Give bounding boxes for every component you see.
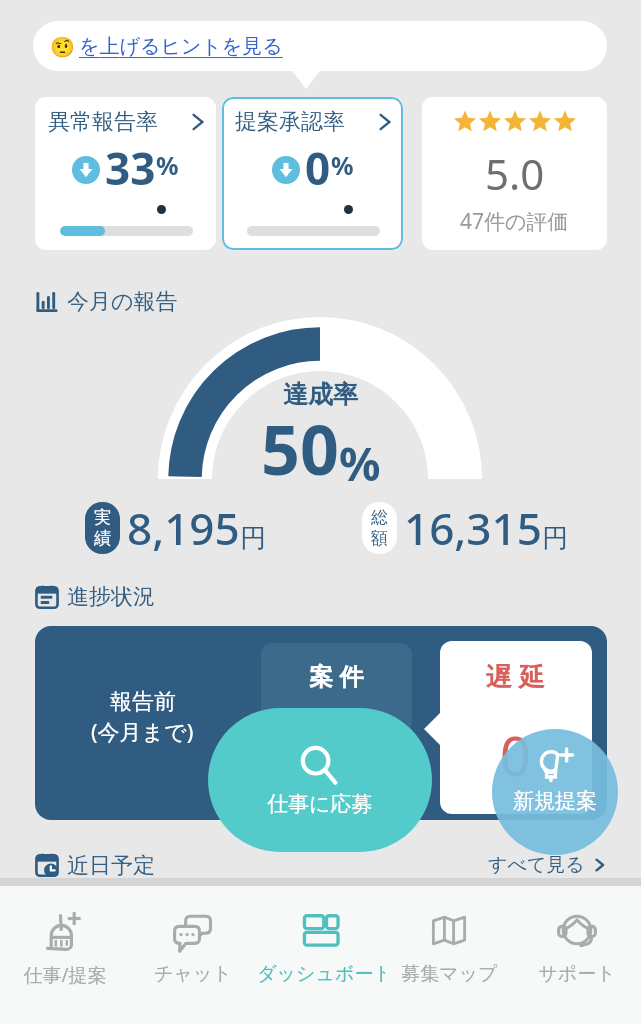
staticText: % — [156, 148, 179, 182]
staticText: 遅 延 — [486, 658, 545, 694]
staticText: 総 — [371, 507, 388, 528]
staticText: 報告前 — [110, 688, 176, 716]
staticText: 績 — [94, 528, 111, 549]
staticText: ダッシュボード — [257, 962, 385, 986]
staticText: 33 — [105, 138, 156, 186]
staticText: 進捗状況 — [67, 583, 155, 611]
staticText: 16,315 — [404, 498, 542, 558]
staticText: % — [331, 148, 354, 182]
staticText: 異常報告率 — [48, 108, 158, 136]
staticText: 募集マップ — [401, 962, 498, 986]
staticText: 実 — [94, 507, 111, 528]
button[interactable]: 仕事/提案 — [0, 886, 129, 1024]
staticText: 新規提案 — [513, 788, 597, 814]
button[interactable]: 新規提案 — [492, 729, 618, 855]
staticText: 50 — [261, 402, 339, 495]
button[interactable]: 提案承認率 — [222, 97, 403, 250]
button[interactable]: 🤨 — [33, 21, 607, 71]
staticText: チャット — [154, 962, 232, 986]
staticText: 🤨 — [50, 35, 75, 58]
staticText: 達成率 — [283, 379, 358, 410]
button[interactable]: 異常報告率 — [35, 97, 216, 250]
staticText: 0 — [305, 138, 331, 186]
staticText: 0 — [500, 718, 531, 792]
staticText: % — [339, 432, 381, 495]
button[interactable]: サポート — [513, 886, 641, 1024]
staticText: を上げるヒントを見る — [79, 34, 283, 59]
button[interactable]: 5.0 — [422, 97, 607, 250]
staticText: 近日予定 — [67, 852, 155, 878]
staticText: 円 — [542, 522, 568, 555]
staticText: (今月まで) — [91, 716, 194, 746]
button[interactable]: ダッシュボード — [257, 886, 385, 1024]
staticText: 提案承認率 — [235, 108, 345, 136]
button[interactable]: 仕事に応募 — [208, 708, 432, 852]
staticText: 額 — [371, 528, 388, 549]
staticText: 仕事/提案 — [23, 962, 107, 988]
other: 新規提案 — [535, 747, 575, 787]
staticText: 案 件 — [309, 659, 364, 692]
staticText: 仕事に応募 — [267, 791, 373, 817]
staticText: すべて見る — [488, 853, 585, 877]
button[interactable]: チャット — [129, 886, 257, 1024]
staticText: 47件の評価 — [460, 207, 569, 236]
button[interactable]: すべて見る — [488, 853, 607, 877]
staticText: 今月の報告 — [67, 288, 178, 316]
staticText: 8,195 — [127, 498, 240, 558]
staticText: 円 — [240, 522, 266, 555]
staticText: サポート — [538, 962, 616, 986]
staticText: 5.0 — [485, 145, 545, 202]
button[interactable]: 募集マップ — [385, 886, 513, 1024]
